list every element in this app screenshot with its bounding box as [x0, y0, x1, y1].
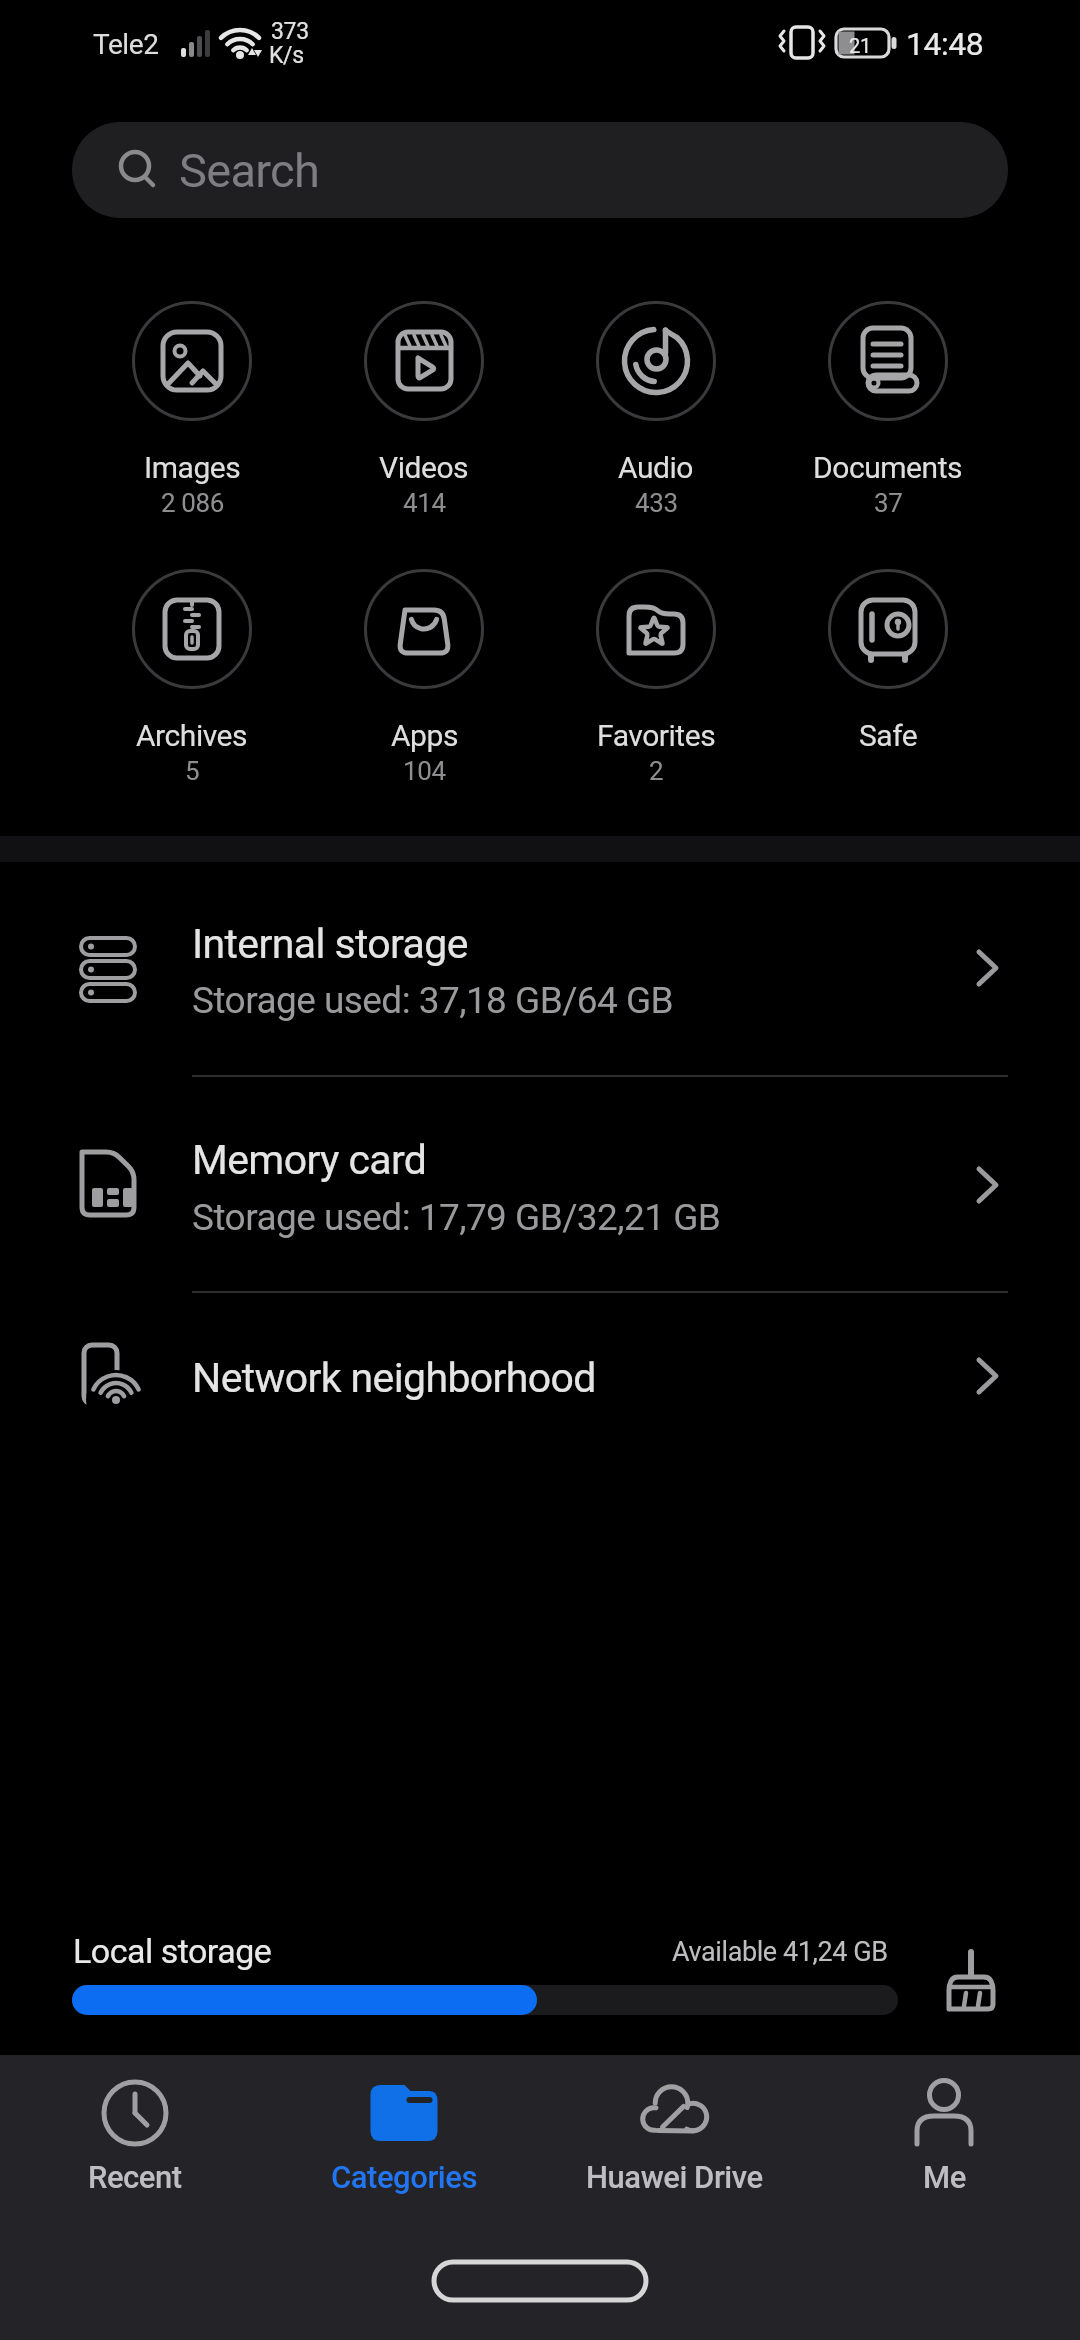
staticText: 14:48	[906, 25, 984, 63]
staticText: 373	[271, 18, 309, 45]
staticText: 414	[403, 488, 446, 518]
button[interactable]: Safe	[772, 569, 1004, 804]
button[interactable]: Images	[76, 301, 308, 536]
staticText: Safe	[859, 718, 918, 753]
staticText: Apps	[391, 718, 458, 753]
staticText: Local storage	[73, 1931, 272, 1971]
staticText: Internal storage	[192, 920, 468, 968]
staticText: Memory card	[192, 1136, 427, 1184]
staticText: Search	[179, 143, 320, 198]
staticText: Me	[923, 2159, 966, 2195]
staticText: Documents	[813, 450, 963, 485]
staticText: Available 41,24 GB	[672, 1936, 888, 1968]
staticText: 5	[185, 756, 200, 786]
staticText: 2	[649, 756, 664, 786]
button[interactable]: Me	[829, 2065, 1059, 2215]
staticText: Network neighborhood	[192, 1354, 596, 1402]
button[interactable]: Huawei Drive	[559, 2065, 789, 2215]
button[interactable]: Videos	[308, 301, 540, 536]
staticText: Favorites	[597, 718, 716, 753]
staticText: 433	[635, 488, 678, 518]
staticText: Categories	[331, 2159, 478, 2195]
staticText: Videos	[379, 450, 469, 485]
button[interactable]: Internal storage	[0, 876, 1080, 1076]
staticText: 37	[874, 488, 903, 518]
staticText: Storage used: 37,18 GB/64 GB	[192, 979, 674, 1022]
staticText: Images	[144, 450, 241, 485]
staticText: Huawei Drive	[586, 2159, 763, 2195]
staticText: 104	[403, 756, 446, 786]
button[interactable]: Apps	[308, 569, 540, 804]
button[interactable]: Audio	[540, 301, 772, 536]
button[interactable]: Recent	[20, 2065, 250, 2215]
button[interactable]: Favorites	[540, 569, 772, 804]
button[interactable]: Search	[72, 122, 1008, 218]
button[interactable]: Network neighborhood	[0, 1292, 1080, 1462]
button[interactable]: Archives	[76, 569, 308, 804]
staticText: K/s	[269, 42, 304, 69]
button[interactable]: Categories	[289, 2065, 519, 2215]
staticText: Storage used: 17,79 GB/32,21 GB	[192, 1196, 721, 1239]
staticText: 2 086	[161, 488, 224, 518]
staticText: 21	[849, 34, 871, 57]
staticText: Recent	[88, 2159, 182, 2195]
button[interactable]: Documents	[772, 301, 1004, 536]
button[interactable]: Memory card	[0, 1076, 1080, 1292]
staticText: Audio	[618, 450, 694, 485]
staticText: Tele2	[93, 28, 159, 61]
staticText: Archives	[136, 718, 248, 753]
